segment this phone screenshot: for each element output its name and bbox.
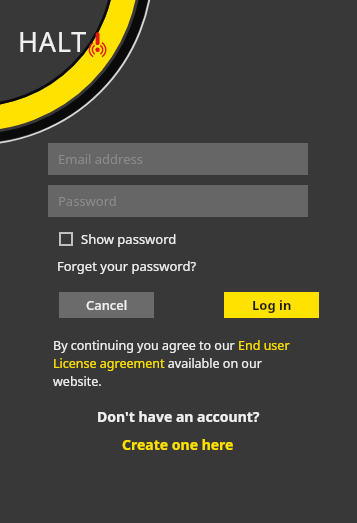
staticText: Don't have an account?	[97, 407, 260, 426]
button[interactable]: Forget your password?	[57, 255, 197, 277]
button[interactable]: Email address	[48, 143, 308, 175]
staticText: Show password	[81, 230, 177, 248]
staticText: Email address	[58, 150, 143, 168]
button[interactable]: Show password	[57, 228, 179, 250]
button[interactable]: By continuing you agree to our End user …	[53, 337, 313, 390]
staticText: Cancel	[86, 296, 128, 314]
button[interactable]: Password	[48, 185, 308, 217]
staticText: Password	[58, 192, 117, 210]
staticText: HALT	[18, 23, 88, 60]
button[interactable]: Create one here	[116, 433, 240, 456]
staticText: By continuing you agree to our End user …	[53, 337, 313, 390]
staticText: Forget your password?	[57, 257, 197, 275]
staticText: Create one here	[122, 435, 234, 454]
button[interactable]: Log in	[224, 292, 319, 318]
button[interactable]: Cancel	[59, 292, 154, 318]
staticText: Log in	[252, 296, 292, 314]
